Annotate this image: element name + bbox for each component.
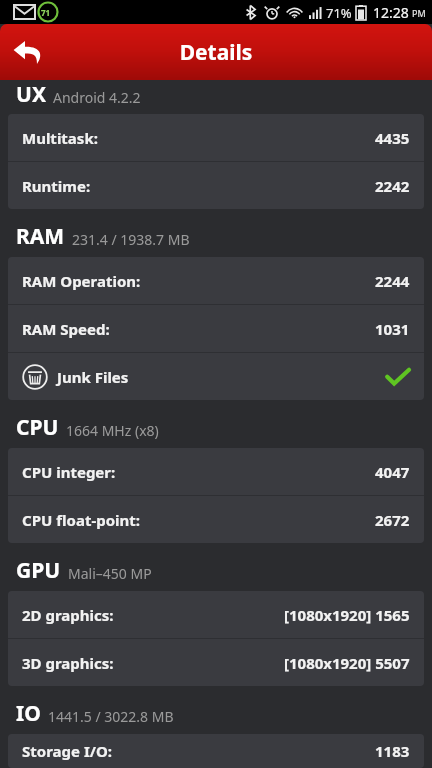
staticText: GPU xyxy=(16,556,61,585)
staticText: 3D graphics: xyxy=(22,653,114,673)
button[interactable]: Runtime: xyxy=(8,162,424,209)
staticText: Storage I/O: xyxy=(22,741,113,761)
staticText: 1183 xyxy=(375,741,410,761)
button[interactable]: Multitask: xyxy=(8,114,424,161)
staticText: Runtime: xyxy=(22,176,91,196)
staticText: IO xyxy=(16,699,41,728)
button[interactable]: Junk Files xyxy=(8,353,424,400)
staticText: 1031 xyxy=(375,319,410,339)
staticText: 1664 MHz (x8) xyxy=(66,421,159,440)
staticText: 2242 xyxy=(375,176,410,196)
staticText: CPU integer: xyxy=(22,462,116,482)
button[interactable]: Back xyxy=(0,24,56,80)
staticText: UX xyxy=(16,80,46,109)
staticText: [1080x1920] 5507 xyxy=(284,653,410,673)
staticText: RAM Speed: xyxy=(22,319,110,339)
staticText: 71% xyxy=(326,4,352,22)
staticText: PM xyxy=(412,7,426,19)
staticText: CPU xyxy=(16,413,59,442)
staticText: RAM xyxy=(16,222,65,251)
staticText: 2244 xyxy=(375,271,410,291)
staticText: 2672 xyxy=(375,510,410,530)
staticText: Details xyxy=(0,38,432,67)
button[interactable]: 3D graphics: xyxy=(8,639,424,686)
staticText: [1080x1920] 1565 xyxy=(284,605,410,625)
button[interactable]: RAM Operation: xyxy=(8,257,424,304)
staticText: 1441.5 / 3022.8 MB xyxy=(48,707,174,726)
staticText: Junk Files xyxy=(57,367,129,387)
staticText: 71 xyxy=(41,7,51,18)
staticText: Multitask: xyxy=(22,128,98,148)
button[interactable]: CPU float-point: xyxy=(8,496,424,543)
staticText: Mali–450 MP xyxy=(68,564,152,583)
staticText: RAM Operation: xyxy=(22,271,141,291)
staticText: 12:28 xyxy=(373,3,409,22)
staticText: 4435 xyxy=(375,128,410,148)
staticText: 4047 xyxy=(375,462,410,482)
button[interactable]: Storage I/O: xyxy=(8,734,424,768)
staticText: CPU float-point: xyxy=(22,510,141,530)
button[interactable]: 2D graphics: xyxy=(8,591,424,638)
button[interactable]: CPU integer: xyxy=(8,448,424,495)
staticText: 231.4 / 1938.7 MB xyxy=(72,230,190,249)
staticText: Android 4.2.2 xyxy=(53,88,141,107)
button[interactable]: RAM Speed: xyxy=(8,305,424,352)
staticText: 2D graphics: xyxy=(22,605,114,625)
